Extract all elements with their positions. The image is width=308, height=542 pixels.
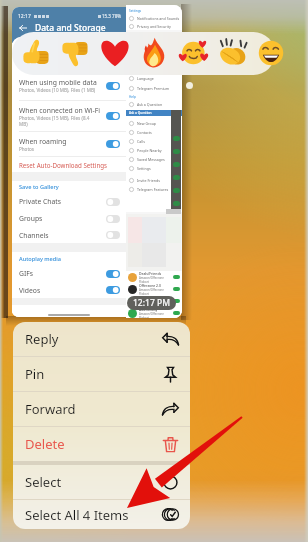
staticText: People Nearby <box>137 148 162 153</box>
staticText: Mediafire <box>139 295 155 300</box>
staticText: Photos, Videos (15 MB), Files (8.4 MB) <box>19 115 90 127</box>
staticText: Reset Auto-Download Settings <box>19 161 107 169</box>
button[interactable]: Telegram Premium <box>126 84 182 93</box>
staticText: Telegram Features <box>137 187 169 192</box>
staticText: Calls <box>137 139 145 144</box>
button[interactable]: Forward <box>13 392 190 426</box>
staticText: Data and Storage <box>35 22 106 34</box>
staticText: Amazon/Offerzone Flipkart <box>139 288 173 295</box>
button[interactable]: Invite Friends <box>126 176 182 185</box>
button[interactable]: Contacts <box>126 128 182 137</box>
button[interactable]: Grinning face reaction <box>254 36 288 70</box>
button[interactable]: Notifications and Sounds <box>126 14 182 23</box>
staticText: Offerzone 2.0 <box>139 283 161 288</box>
staticText: Telegram Premium <box>137 86 170 91</box>
staticText: Channels <box>19 231 106 240</box>
staticText: Save to Gallery <box>19 183 59 191</box>
staticText: Saved Messages <box>137 157 165 162</box>
button[interactable]: Deals/Friends <box>126 271 182 283</box>
button[interactable]: Reply <box>13 322 190 356</box>
button[interactable]: Groups <box>12 210 126 227</box>
button[interactable]: Mediafire <box>126 295 182 307</box>
staticText: Privacy and Security <box>137 24 171 29</box>
button[interactable]: Addtionally <box>126 307 182 318</box>
button[interactable]: Select <box>13 465 190 499</box>
staticText: Language <box>137 76 154 81</box>
button[interactable]: Select All 4 Items <box>13 500 190 529</box>
button[interactable]: Privacy and Security <box>126 23 182 30</box>
staticText: GIFs <box>19 269 106 278</box>
button[interactable]: Smiling face with hearts reaction <box>177 36 211 70</box>
button[interactable]: When using mobile data <box>12 71 126 100</box>
staticText: Groups <box>19 214 106 223</box>
staticText: Select <box>25 473 162 491</box>
button[interactable]: Thumbs down reaction <box>59 36 93 70</box>
staticText: Ask a Question <box>129 111 152 115</box>
staticText: Help <box>129 95 136 99</box>
button[interactable]: Fire reaction <box>137 36 171 70</box>
staticText: Forward <box>25 400 162 418</box>
button[interactable]: Heart reaction <box>98 36 132 70</box>
staticText: Amazon/Offerzone Flipkart <box>139 300 173 307</box>
button[interactable]: Settings <box>126 164 182 173</box>
button[interactable]: Private Chats <box>12 193 126 210</box>
staticText: New Group <box>137 121 157 126</box>
staticText: Ask a Question <box>137 102 163 107</box>
button[interactable]: Pin <box>13 357 190 391</box>
staticText: When connected on Wi-Fi <box>19 106 101 115</box>
staticText: Photos <box>19 146 35 152</box>
staticText: Reply <box>25 330 162 348</box>
staticText: Private Chats <box>19 197 106 206</box>
button[interactable]: New Group <box>126 119 182 128</box>
button[interactable]: Calls <box>126 137 182 146</box>
staticText: Contacts <box>137 130 152 135</box>
staticText: Settings <box>129 9 142 13</box>
button[interactable]: People Nearby <box>126 146 182 155</box>
button[interactable]: Delete <box>13 427 190 461</box>
button[interactable]: When roaming <box>12 132 126 156</box>
staticText: 15.3 78% <box>102 13 121 19</box>
staticText: Amazon/Offerzone Flipkart <box>139 312 173 318</box>
staticText: Photos, Videos (10 MB), Files (1 MB) <box>19 87 96 93</box>
button[interactable]: Videos <box>12 282 126 298</box>
staticText: 12:17 PM <box>133 297 170 309</box>
button[interactable]: Clapping hands reaction <box>216 36 250 70</box>
staticText: Invite Friends <box>137 178 160 183</box>
button[interactable]: Ask a Question <box>126 100 182 109</box>
button[interactable]: Reset Auto-Download Settings <box>12 157 126 172</box>
button[interactable]: Language <box>126 74 182 83</box>
staticText: Autoplay media <box>19 255 62 263</box>
button[interactable]: Channels <box>12 227 126 243</box>
staticText: Select All 4 Items <box>25 506 162 524</box>
staticText: Delete <box>25 435 162 453</box>
button[interactable]: Thumbs up reaction <box>20 36 54 70</box>
staticText: Settings <box>137 166 151 171</box>
button[interactable]: Back <box>18 23 28 33</box>
staticText: When roaming <box>19 137 67 146</box>
staticText: When using mobile data <box>19 78 97 87</box>
button[interactable]: Telegram Features <box>126 185 182 194</box>
button[interactable]: When connected on Wi-Fi <box>12 101 126 131</box>
button[interactable]: GIFs <box>12 265 126 282</box>
button[interactable]: Offerzone 2.0 <box>126 283 182 295</box>
staticText: Videos <box>19 286 106 295</box>
staticText: Addtionally <box>139 307 158 312</box>
staticText: Deals/Friends <box>139 271 162 276</box>
button[interactable]: Saved Messages <box>126 155 182 164</box>
staticText: 12:17 <box>18 13 31 20</box>
staticText: Notifications and Sounds <box>137 16 180 21</box>
staticText: Pin <box>25 365 162 383</box>
staticText: Amazon/Offerzone Flipkart <box>139 276 173 283</box>
